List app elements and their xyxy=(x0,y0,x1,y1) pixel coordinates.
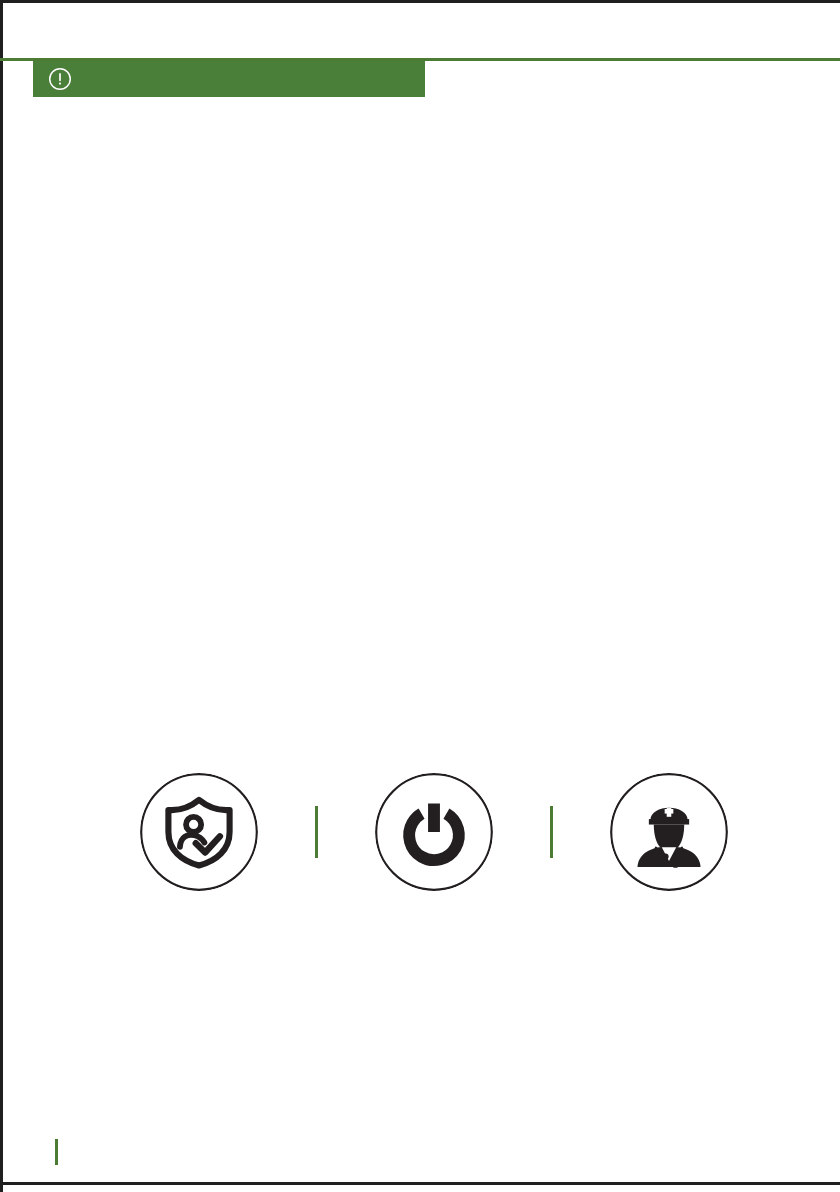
button[interactable]: Protection xyxy=(140,773,258,891)
button[interactable]: Doctor xyxy=(610,773,728,891)
button[interactable]: Notice xyxy=(33,61,425,97)
button[interactable]: Power xyxy=(375,773,493,891)
